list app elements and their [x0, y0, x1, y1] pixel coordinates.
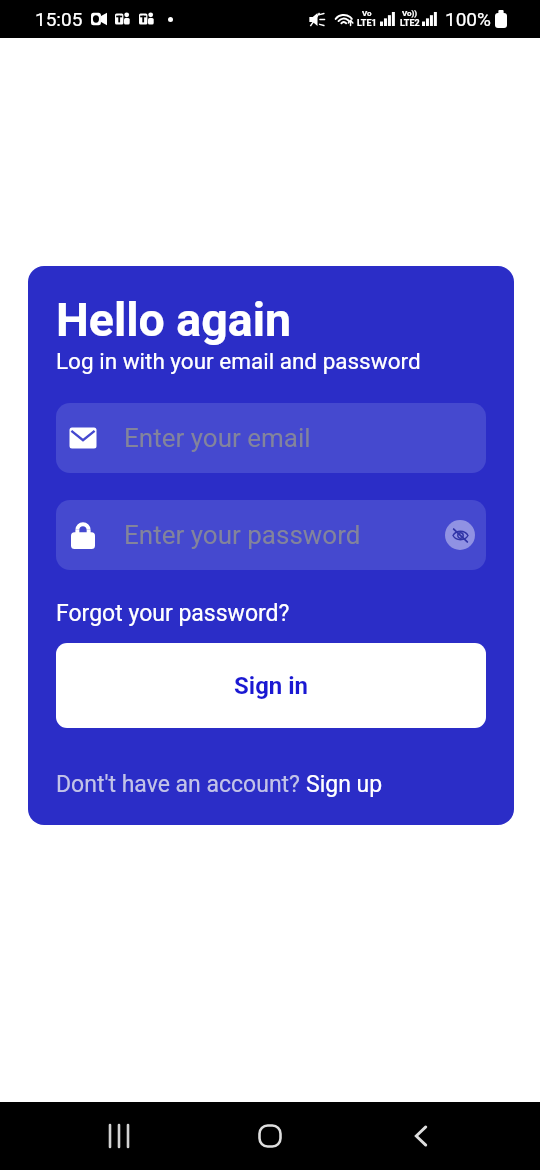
staticText: Sign up [306, 771, 383, 798]
staticText: 15:05 [35, 8, 83, 30]
staticText: Enter your password [124, 520, 361, 550]
button[interactable]: Enter your password [56, 500, 486, 570]
staticText: Vo)) [402, 9, 418, 18]
staticText: Hello again [56, 293, 292, 347]
staticText: 100% [445, 8, 491, 30]
staticText: Vo [362, 9, 372, 18]
button[interactable]: Enter your email [56, 403, 486, 473]
staticText: LTE1 [357, 18, 377, 29]
button[interactable]: Sign up [306, 771, 383, 798]
button[interactable]: Toggle password visibility [445, 520, 475, 550]
staticText: Dont't have an account? [56, 771, 306, 798]
button[interactable]: Forgot your password? [56, 600, 290, 627]
button[interactable]: Home [239, 1105, 301, 1167]
button[interactable]: Recents [89, 1105, 151, 1167]
staticText: Log in with your email and password [56, 348, 421, 374]
button[interactable]: Back [390, 1105, 452, 1167]
staticText: Sign in [234, 672, 309, 700]
staticText: LTE2 [400, 18, 420, 29]
button[interactable]: Sign in [56, 643, 486, 728]
staticText: Enter your email [124, 423, 311, 453]
staticText: Forgot your password? [56, 600, 290, 627]
